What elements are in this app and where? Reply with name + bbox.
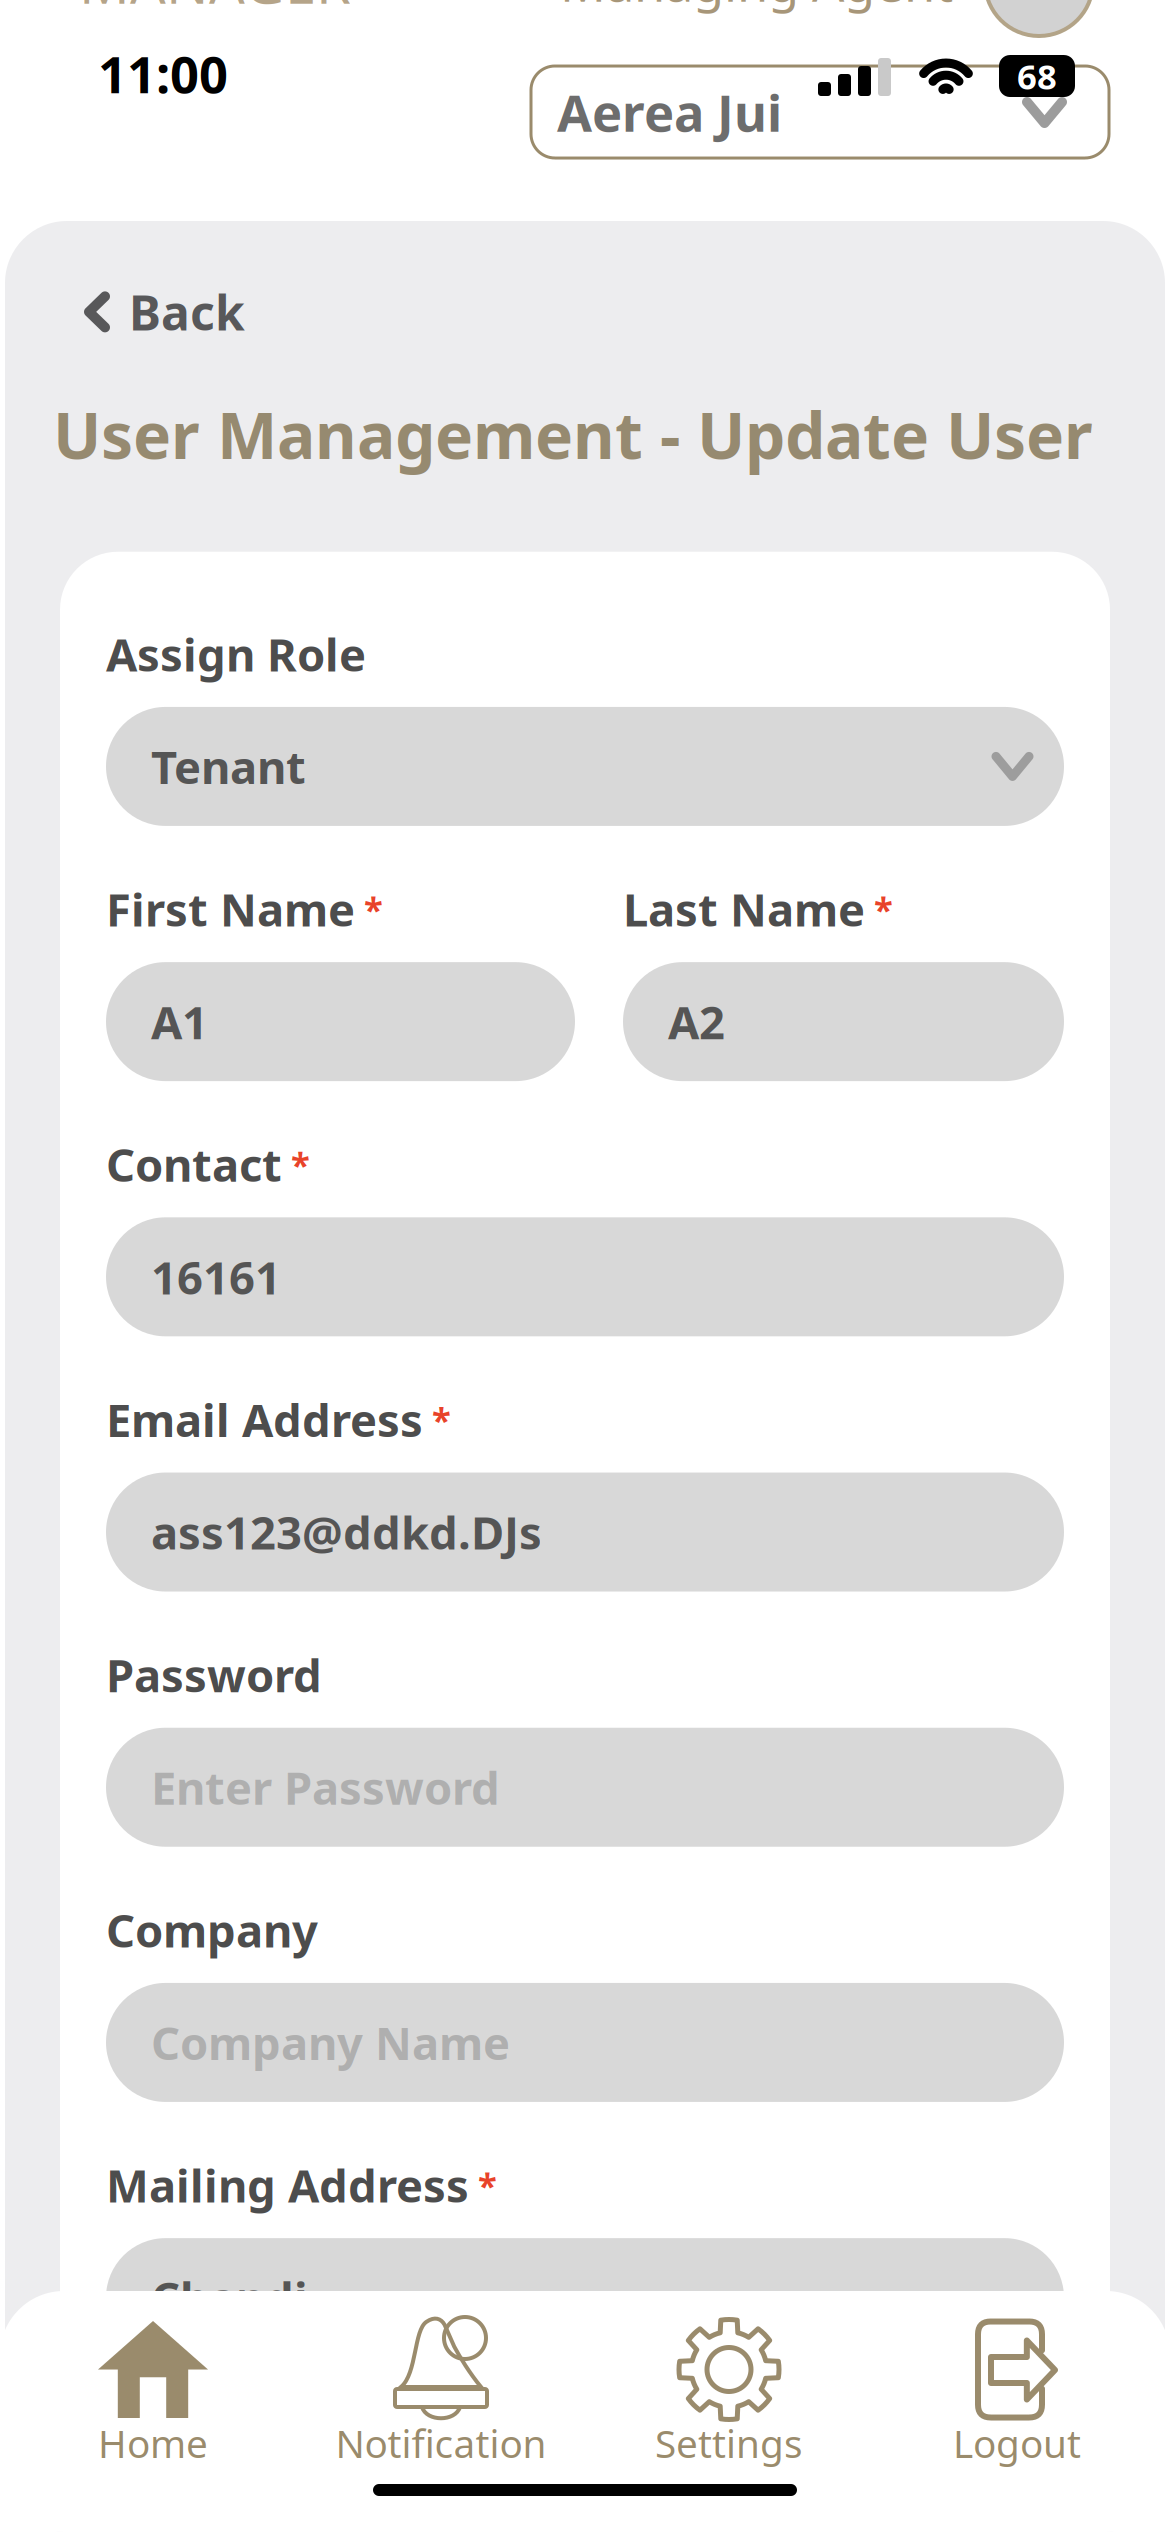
staticText: Enter Password	[151, 1757, 500, 1817]
staticText: Contact	[106, 1134, 282, 1194]
staticText: Last Name	[623, 879, 865, 939]
staticText: Managing Agent	[560, 0, 953, 16]
button[interactable]: Home	[9, 2321, 297, 2463]
staticText: Aerea Jui	[557, 78, 782, 146]
staticText: Assign Role	[106, 624, 366, 684]
staticText: Tenant	[151, 736, 306, 796]
staticText: Email Address	[106, 1389, 423, 1449]
staticText: 16161	[151, 1247, 281, 1307]
button[interactable]: Tenant	[106, 707, 1064, 826]
staticText: ass123@ddkd.DJs	[151, 1502, 542, 1562]
button[interactable]: Settings	[585, 2321, 873, 2463]
button[interactable]: Logout	[873, 2321, 1161, 2463]
staticText: Company	[106, 1900, 318, 1960]
staticText: Home	[98, 2417, 208, 2469]
staticText: 68	[1017, 53, 1057, 99]
button[interactable]: Aerea Jui	[531, 66, 1109, 158]
staticText: *	[874, 886, 893, 932]
staticText: 11:00	[98, 40, 228, 107]
staticText: Back	[129, 280, 245, 344]
staticText: Notification	[335, 2417, 546, 2469]
staticText: First Name	[106, 879, 355, 939]
staticText: Logout	[953, 2417, 1081, 2469]
staticText: MANAGER	[79, 0, 351, 19]
staticText: User Management - Update User	[53, 392, 1093, 477]
staticText: *	[432, 1396, 451, 1442]
staticText: Password	[106, 1644, 322, 1705]
staticText: Chandi	[151, 2267, 308, 2328]
staticText: Mailing Address	[106, 2155, 469, 2215]
button[interactable]: Notification	[297, 2321, 585, 2463]
staticText: Company Name	[151, 2012, 510, 2072]
staticText: A1	[151, 991, 208, 1052]
staticText: Settings	[655, 2417, 803, 2469]
button[interactable]: Back	[5, 221, 1165, 344]
staticText: *	[364, 886, 383, 932]
staticText: A2	[668, 991, 725, 1052]
staticText: *	[478, 2162, 497, 2208]
staticText: *	[291, 1141, 310, 1187]
